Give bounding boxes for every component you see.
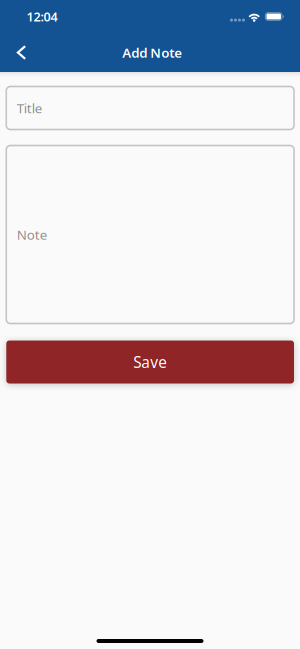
- staticText: Save: [133, 352, 167, 372]
- button[interactable]: Back: [4, 33, 38, 72]
- staticText: Note: [17, 226, 48, 243]
- staticText: Add Note: [122, 44, 182, 61]
- staticText: 12:04: [26, 8, 57, 25]
- staticText: Title: [17, 99, 43, 117]
- button[interactable]: Save: [6, 340, 294, 383]
